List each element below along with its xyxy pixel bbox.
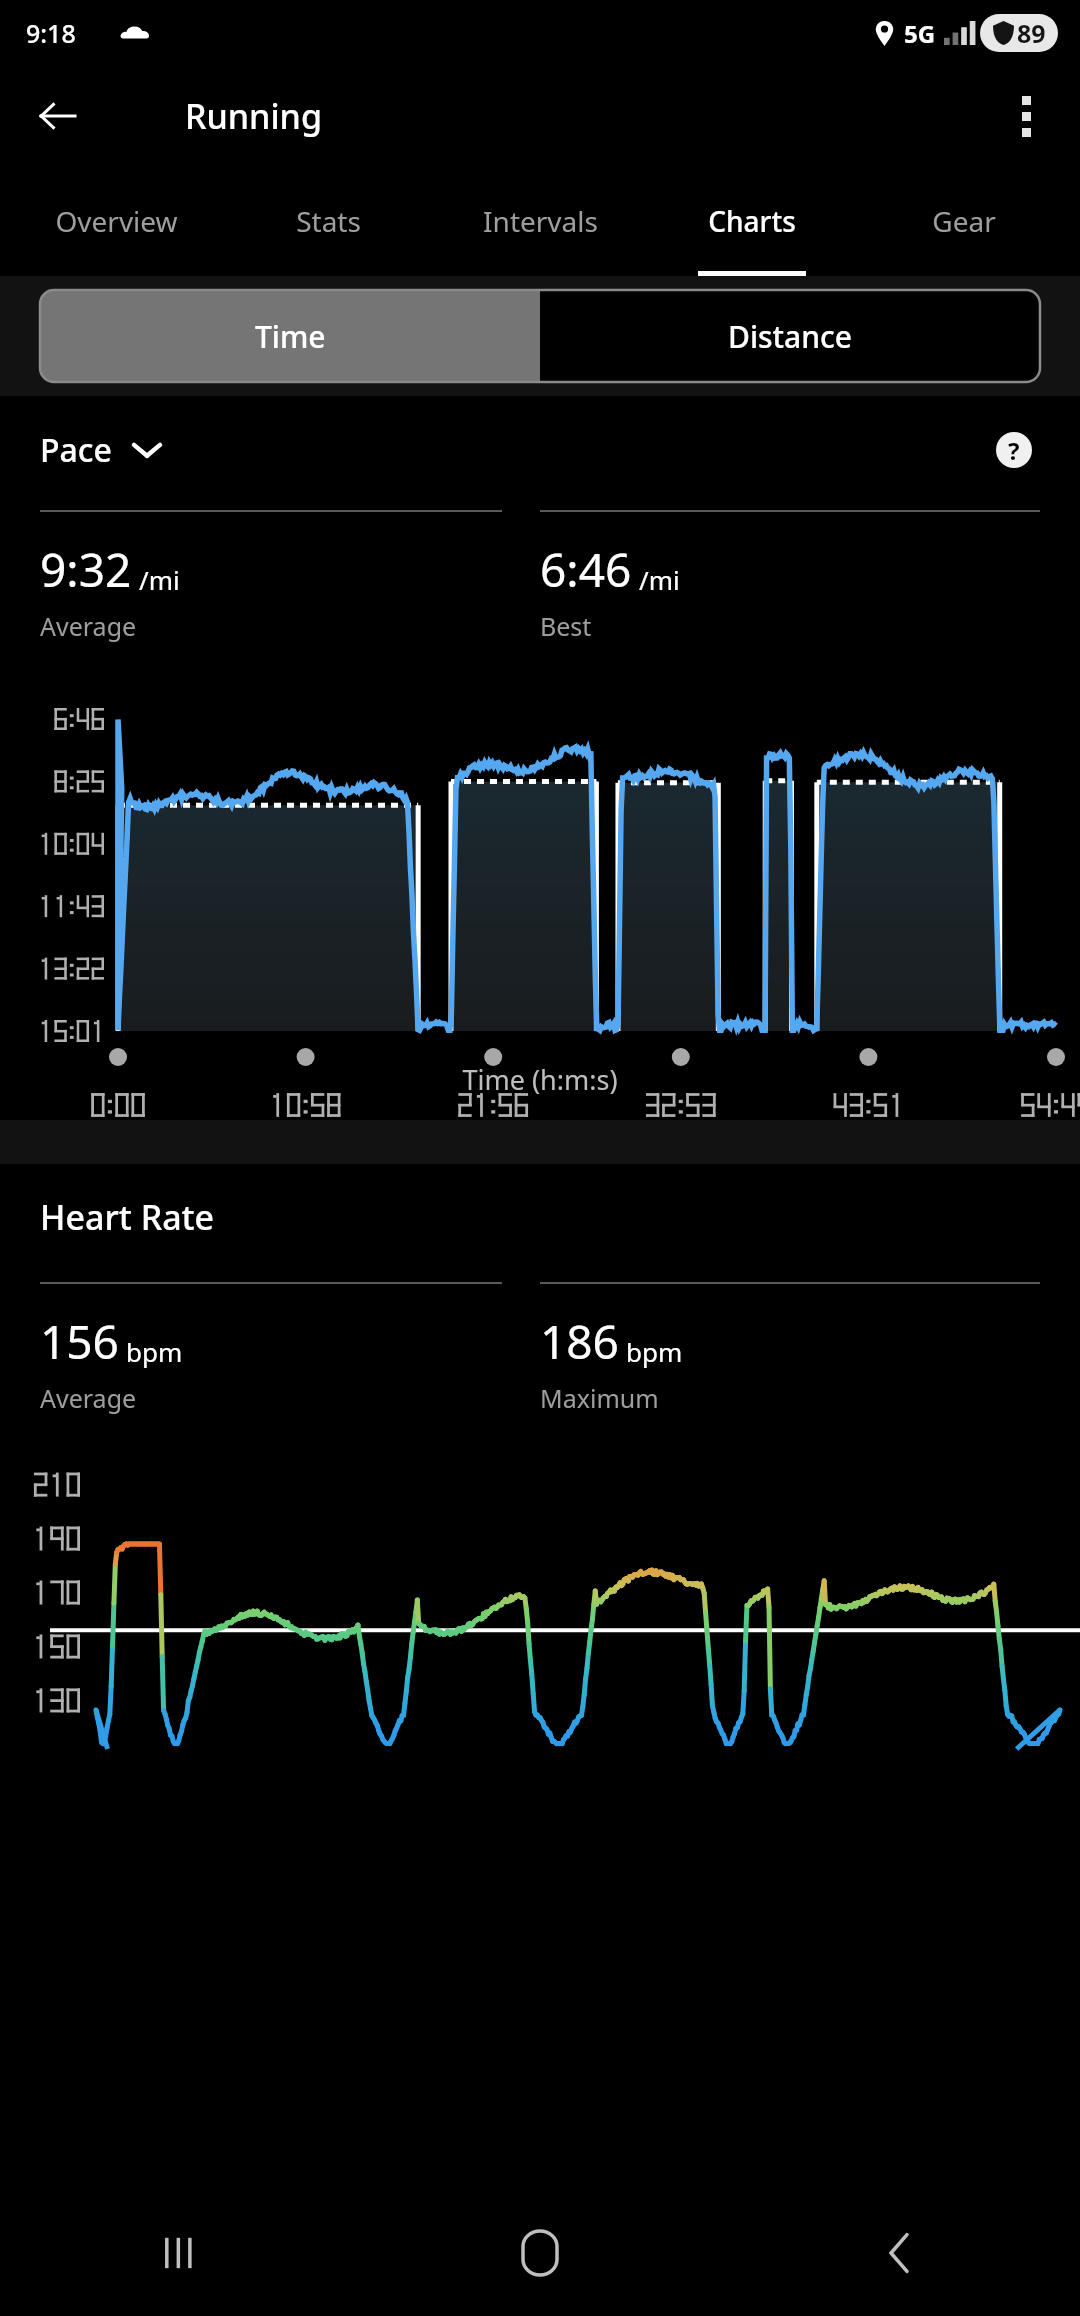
staticText: Overview: [55, 202, 178, 240]
staticText: Average: [40, 1381, 137, 1415]
button[interactable]: Recents: [0, 2190, 360, 2316]
staticText: Pace: [40, 428, 112, 472]
staticText: /mi: [639, 562, 680, 597]
staticText: Gear: [932, 202, 996, 240]
button[interactable]: Stats: [222, 166, 434, 276]
staticText: bpm: [626, 1334, 683, 1369]
button[interactable]: More options: [988, 78, 1064, 154]
staticText: Stats: [296, 202, 361, 240]
staticText: Best: [540, 609, 592, 643]
staticText: 89: [1017, 16, 1046, 50]
staticText: Average: [40, 609, 137, 643]
staticText: Distance: [728, 316, 853, 357]
staticText: bpm: [126, 1334, 183, 1369]
button[interactable]: Time: [40, 290, 540, 382]
staticText: Maximum: [540, 1381, 659, 1415]
staticText: Time (h:m:s): [0, 1061, 1080, 1098]
button[interactable]: Overview: [10, 166, 222, 276]
staticText: ?: [1008, 434, 1020, 467]
staticText: 9:18: [26, 16, 76, 50]
button[interactable]: Back: [22, 81, 92, 151]
button[interactable]: Pace: [40, 428, 160, 472]
button[interactable]: Charts: [646, 166, 858, 276]
staticText: Charts: [708, 202, 796, 240]
staticText: Time: [255, 316, 326, 357]
staticText: 9:32: [40, 538, 132, 601]
button[interactable]: Intervals: [434, 166, 646, 276]
staticText: 5G: [904, 17, 936, 50]
staticText: Running: [185, 93, 323, 139]
staticText: 6:46: [540, 538, 632, 601]
staticText: 156: [40, 1310, 119, 1373]
staticText: /mi: [139, 562, 180, 597]
staticText: 186: [540, 1310, 619, 1373]
button[interactable]: Help: [988, 424, 1040, 476]
button[interactable]: Back: [720, 2190, 1080, 2316]
button[interactable]: Gear: [858, 166, 1070, 276]
button[interactable]: Distance: [540, 290, 1040, 382]
staticText: Intervals: [483, 202, 598, 240]
staticText: Heart Rate: [40, 1194, 215, 1240]
button[interactable]: Home: [360, 2190, 720, 2316]
